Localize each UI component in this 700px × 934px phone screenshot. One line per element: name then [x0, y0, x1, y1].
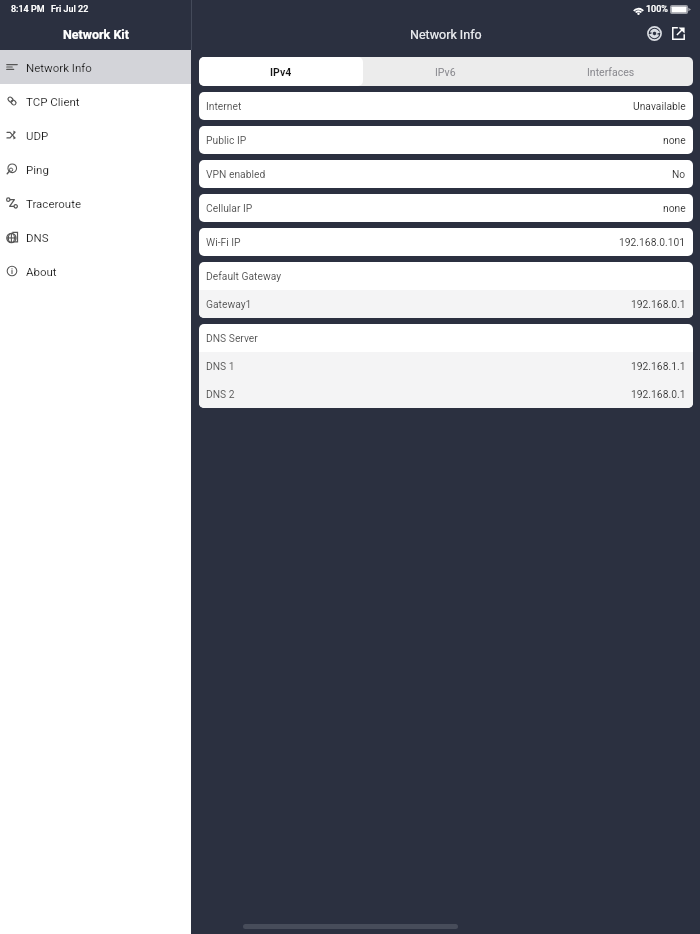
button[interactable]: DNS — [0, 220, 191, 254]
staticText: Default Gateway — [206, 270, 282, 282]
button[interactable]: Share — [667, 22, 689, 44]
staticText: none — [663, 202, 686, 214]
button[interactable]: IPv4 — [199, 57, 363, 86]
button[interactable]: Internet — [199, 92, 693, 120]
staticText: No — [672, 168, 686, 180]
staticText: IPv4 — [270, 66, 292, 78]
button[interactable]: UDP — [0, 118, 191, 152]
staticText: 192.168.0.1 — [631, 388, 686, 400]
staticText: IPv6 — [435, 66, 456, 78]
staticText: Network Info — [26, 61, 92, 74]
button[interactable]: Default Gateway — [199, 262, 693, 290]
staticText: Fri Jul 22 — [51, 4, 89, 15]
staticText: 100% — [646, 4, 668, 15]
staticText: DNS 2 — [206, 388, 235, 400]
button[interactable]: About — [0, 254, 191, 288]
staticText: Cellular IP — [206, 202, 253, 214]
staticText: 192.168.1.1 — [631, 360, 686, 372]
staticText: VPN enabled — [206, 168, 266, 180]
staticText: Interfaces — [587, 66, 635, 78]
button[interactable]: DNS 1 — [199, 352, 693, 380]
staticText: 192.168.0.1 — [631, 298, 686, 310]
staticText: Ping — [26, 163, 49, 176]
staticText: TCP Client — [26, 95, 80, 108]
staticText: 8:14 PM — [11, 4, 45, 15]
staticText: Unavailable — [633, 100, 686, 112]
staticText: DNS 1 — [206, 360, 235, 372]
button[interactable]: Network Info — [0, 50, 191, 84]
staticText: Traceroute — [26, 197, 82, 210]
button[interactable]: TCP Client — [0, 84, 191, 118]
button[interactable]: Gateway1 — [199, 290, 693, 318]
staticText: About — [26, 265, 57, 278]
button[interactable]: Ping — [0, 152, 191, 186]
staticText: DNS Server — [206, 332, 258, 344]
staticText: Public IP — [206, 134, 247, 146]
button[interactable]: Cellular IP — [199, 194, 693, 222]
button[interactable]: Traceroute — [0, 186, 191, 220]
button[interactable]: Wi-Fi IP — [199, 228, 693, 256]
staticText: UDP — [26, 129, 49, 142]
button[interactable]: DNS Server — [199, 324, 693, 352]
staticText: 192.168.0.101 — [619, 236, 686, 248]
button[interactable]: IPv6 — [363, 57, 528, 86]
staticText: Gateway1 — [206, 298, 252, 310]
button[interactable]: Refresh — [643, 22, 665, 44]
button[interactable]: Public IP — [199, 126, 693, 154]
staticText: DNS — [26, 231, 49, 244]
staticText: Internet — [206, 100, 242, 112]
button[interactable]: DNS 2 — [199, 380, 693, 408]
staticText: Wi-Fi IP — [206, 236, 241, 248]
staticText: Network Kit — [63, 27, 129, 42]
button[interactable]: VPN enabled — [199, 160, 693, 188]
staticText: Network Info — [410, 27, 482, 42]
button[interactable]: Interfaces — [528, 57, 693, 86]
staticText: none — [663, 134, 686, 146]
